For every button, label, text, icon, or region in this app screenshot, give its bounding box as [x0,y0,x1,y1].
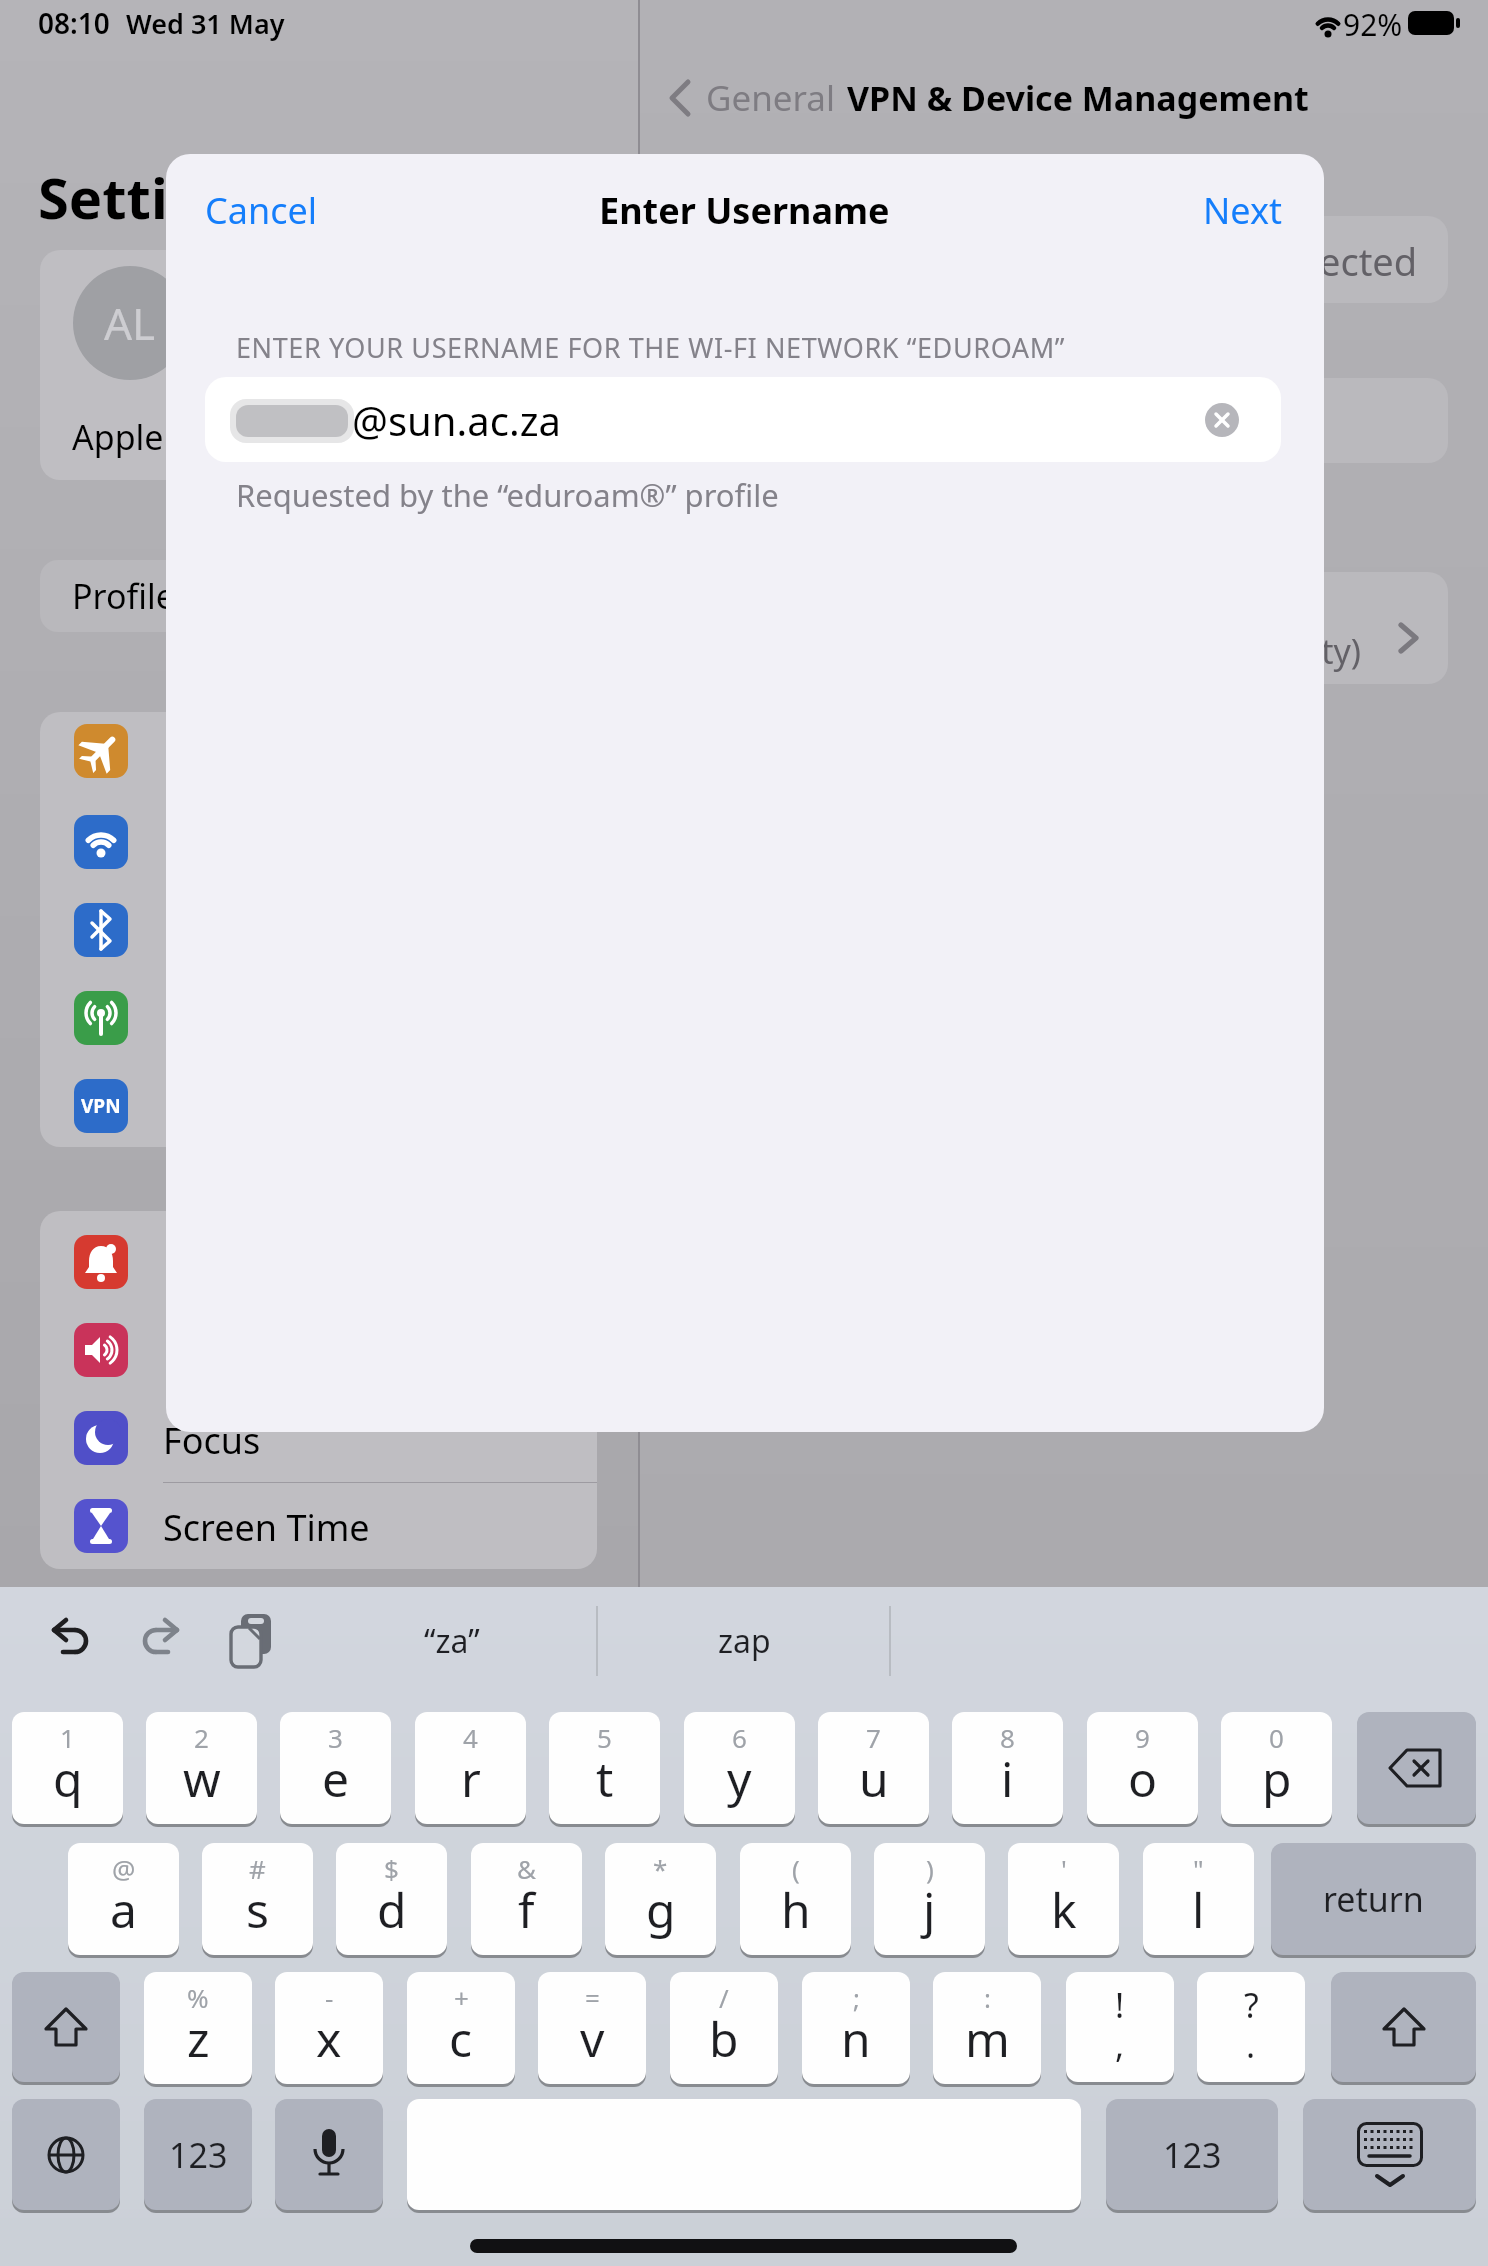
button[interactable]: 123 [1106,2099,1278,2210]
button[interactable]: 8 [952,1712,1063,1824]
button[interactable] [1200,185,1290,235]
button[interactable]: $ [336,1843,447,1955]
staticText: 3 [328,1720,343,1755]
staticText: % [187,1980,209,2015]
button[interactable] [74,1499,128,1553]
staticText: VPN [81,1093,121,1119]
staticText: ENTER YOUR USERNAME FOR THE WI-FI NETWOR… [236,329,1066,366]
button[interactable]: @ [68,1843,179,1955]
staticText: ' [1061,1851,1067,1886]
button[interactable] [229,1614,273,1668]
staticText: c [449,2006,473,2071]
staticText: 8 [1000,1720,1015,1755]
staticText: # [249,1851,266,1886]
button[interactable] [74,815,128,869]
button[interactable] [74,903,128,957]
staticText: 5 [597,1720,612,1755]
staticText: e [322,1746,350,1811]
button[interactable] [1357,1712,1476,1824]
button[interactable] [50,1619,90,1661]
button[interactable] [141,1619,181,1661]
button[interactable]: ' [1008,1843,1119,1955]
button[interactable] [205,185,335,235]
button[interactable]: ? [1197,1972,1305,2082]
staticText: r [461,1746,481,1811]
staticText: 2 [194,1720,209,1755]
staticText: z [187,2006,210,2071]
button[interactable] [598,1596,888,1686]
button[interactable]: ; [802,1972,910,2084]
staticText: , [1115,2022,1125,2068]
staticText: g [646,1877,676,1942]
button[interactable]: 5 [549,1712,660,1824]
staticText: h [781,1877,811,1942]
staticText: t [596,1746,614,1811]
button[interactable] [1303,2099,1476,2210]
button[interactable] [74,1323,128,1377]
staticText: l [1192,1877,1205,1942]
button[interactable] [307,1596,597,1686]
button[interactable]: 4 [415,1712,526,1824]
button[interactable] [74,1235,128,1289]
staticText: 9 [1135,1720,1150,1755]
staticText: AL [104,293,156,353]
staticText: “za” [424,1619,480,1663]
staticText: ( [792,1851,800,1886]
staticText: @ [112,1851,136,1886]
button[interactable]: # [202,1843,313,1955]
staticText: n [841,2006,871,2071]
staticText: / [719,1980,729,2015]
button[interactable] [74,724,128,778]
button[interactable] [74,991,128,1045]
button[interactable]: 3 [280,1712,391,1824]
button[interactable]: 1 [12,1712,123,1824]
staticText: b [709,2006,739,2071]
button[interactable]: + [407,1972,515,2084]
button[interactable] [275,2099,383,2210]
button[interactable]: 9 [1087,1712,1198,1824]
button[interactable]: * [605,1843,716,1955]
button[interactable]: = [538,1972,646,2084]
button[interactable]: : [933,1972,1041,2084]
staticText: ! [1115,1982,1125,2028]
staticText: 6 [732,1720,747,1755]
staticText: Cancel [205,186,318,235]
staticText: u [859,1746,889,1811]
staticText: General [706,74,836,122]
button[interactable]: 7 [818,1712,929,1824]
button[interactable]: / [670,1972,778,2084]
button[interactable]: % [144,1972,252,2084]
button[interactable] [74,1411,128,1465]
button[interactable]: - [275,1972,383,2084]
staticText: v [580,2006,605,2071]
button[interactable] [1205,403,1239,437]
staticText: 7 [866,1720,881,1755]
button[interactable]: ) [874,1843,985,1955]
staticText: s [246,1877,269,1942]
button[interactable] [12,1972,120,2082]
button[interactable]: 6 [684,1712,795,1824]
staticText: University) [1191,628,1361,674]
staticText: a [110,1877,137,1942]
button[interactable] [1331,1972,1476,2082]
staticText: ; [853,1980,860,2015]
staticText: Connected [1225,235,1418,287]
button[interactable] [74,1079,128,1133]
button[interactable] [205,377,1281,462]
button[interactable]: ( [740,1843,851,1955]
staticText: : [984,1980,991,2015]
button[interactable]: ! [1066,1972,1174,2082]
staticText: m [965,2006,1010,2071]
button[interactable]: & [471,1843,582,1955]
staticText: y [727,1746,752,1811]
staticText: * [653,1851,668,1886]
button[interactable]: " [1143,1843,1254,1955]
button[interactable]: return [1271,1843,1476,1955]
staticText: Enter Username [599,186,890,235]
button[interactable]: 2 [146,1712,257,1824]
button[interactable] [12,2099,120,2210]
button[interactable]: 123 [144,2099,252,2210]
button[interactable]: 0 [1221,1712,1332,1824]
staticText: ? [1244,1982,1259,2028]
